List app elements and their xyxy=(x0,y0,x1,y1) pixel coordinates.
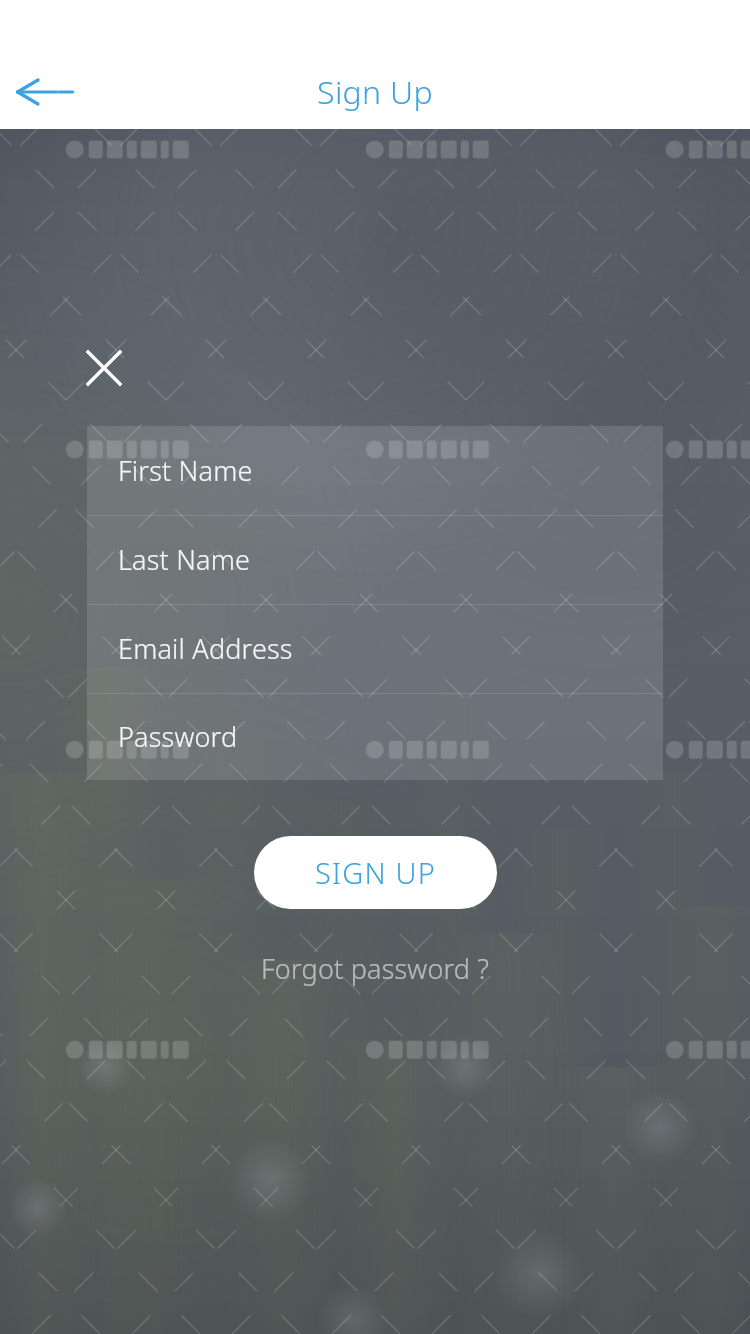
button[interactable]: SIGN UP xyxy=(254,836,497,909)
staticText: Password xyxy=(118,718,238,755)
button[interactable]: Forgot password ? xyxy=(215,941,535,995)
staticText: First Name xyxy=(118,452,253,489)
staticText: SIGN UP xyxy=(315,853,436,892)
button[interactable]: Close xyxy=(73,337,135,399)
staticText: Email Address xyxy=(118,630,293,667)
button[interactable]: Password xyxy=(87,693,663,780)
staticText: Sign Up xyxy=(0,70,750,114)
staticText: Last Name xyxy=(118,541,251,578)
staticText: Forgot password ? xyxy=(261,950,490,987)
button[interactable]: Last Name xyxy=(87,515,663,604)
button[interactable]: Email Address xyxy=(87,604,663,693)
button[interactable]: First Name xyxy=(87,426,663,515)
button[interactable]: Back xyxy=(8,66,80,118)
